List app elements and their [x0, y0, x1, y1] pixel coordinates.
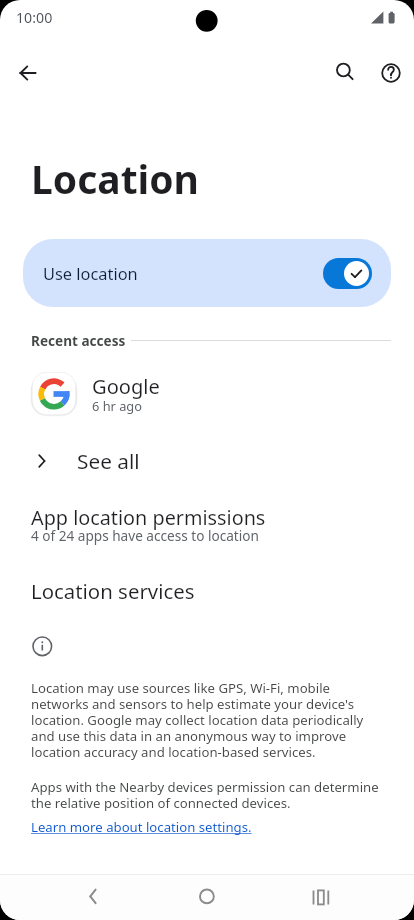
staticText: 6 hr ago — [92, 397, 142, 414]
staticText: Location may use sources like GPS, Wi-Fi… — [31, 679, 383, 761]
staticText: Recent access — [31, 331, 126, 350]
staticText: See all — [77, 447, 140, 475]
button[interactable]: Back — [68, 874, 114, 920]
button[interactable]: Back — [8, 53, 48, 93]
button[interactable]: Home — [184, 874, 230, 920]
staticText: 10:00 — [16, 8, 53, 27]
button[interactable]: See all — [0, 441, 414, 481]
button[interactable]: Use location — [23, 239, 391, 307]
button[interactable]: Google — [0, 366, 414, 420]
button[interactable]: Help — [371, 53, 411, 93]
button[interactable]: Search — [325, 52, 365, 92]
button[interactable]: App location permissions — [0, 496, 414, 548]
staticText: App location permissions — [31, 504, 266, 531]
staticText: Location services — [31, 577, 195, 605]
button[interactable]: Recent apps — [298, 875, 344, 920]
staticText: Use location — [43, 262, 138, 284]
button[interactable]: Use location — [323, 258, 372, 289]
staticText: Location — [31, 152, 199, 205]
staticText: Learn more about location settings. — [31, 818, 252, 836]
staticText: Apps with the Nearby devices permission … — [31, 778, 383, 812]
staticText: 4 of 24 apps have access to location — [31, 526, 259, 545]
staticText: Google — [92, 373, 160, 400]
button[interactable]: Learn more about location settings. — [31, 818, 252, 836]
